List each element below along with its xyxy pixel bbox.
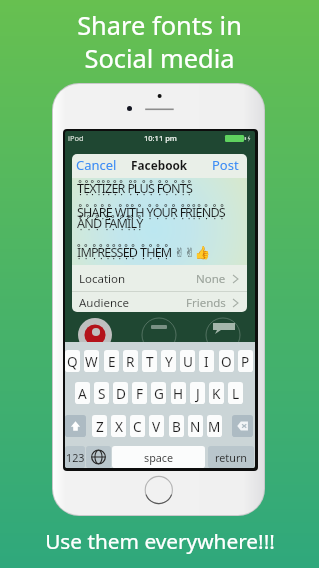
button[interactable]: K [209,382,224,404]
button[interactable]: 123 [65,446,85,468]
staticText: X [115,417,123,436]
button[interactable]: Z [92,415,107,437]
button[interactable]: W [84,350,99,372]
staticText: W [85,352,98,371]
button[interactable]: F [132,382,147,404]
staticText: F [136,384,144,403]
button[interactable]: Post [212,157,247,175]
button[interactable]: space [112,446,205,468]
staticText: J [196,384,200,403]
staticText: Audience [79,295,130,311]
staticText: G [154,384,164,403]
button[interactable]: V [149,415,164,437]
staticText: iPod [68,133,84,143]
button[interactable]: D [113,382,128,404]
button[interactable]: N [188,415,203,437]
button[interactable]: M [207,415,222,437]
staticText: Ị̊Ṃ̊P̣̊Ṛ̊Ẹ̊Ṣ̊Ṣ̊Ẹ̊Ḍ̊ Ṭ̊Ḥ̊Ẹ̊Ṃ̊… [77,244,210,261]
staticText: Q [67,352,78,371]
staticText: U [183,352,193,371]
staticText: V [152,417,161,436]
button[interactable]: U [180,350,195,372]
button[interactable]: H [171,382,186,404]
button[interactable]: R [123,350,138,372]
button[interactable]: Audience [72,292,247,312]
staticText: K [212,384,221,403]
button[interactable]: Backspace [232,415,253,437]
button[interactable]: Shift [65,415,86,437]
button[interactable]: return [208,446,254,468]
button[interactable]: C [130,415,145,437]
button[interactable]: Ṭ̊Ẹ̊X̣̊Ṭ̊Ị̊Ẓ̊Ẹ̊Ṛ̊ P̣̊Ḷ̊Ụ̊Ṣ̊ F̊… [72,178,247,265]
staticText: O [221,352,232,371]
button[interactable]: A [75,382,90,404]
button[interactable]: G [151,382,166,404]
staticText: Z [96,417,104,436]
button[interactable]: L [228,382,243,404]
staticText: Ṣ̊Ḥ̊Ạ̊Ṛ̊Ẹ̊ Ẉ̊Ị̊Ṭ̊Ḥ̊ Ỵ̊Ọ̊Ụ̊R̊… [77,204,225,221]
staticText: None [196,271,226,287]
staticText: Friends [186,295,226,311]
staticText: I [204,352,209,371]
button[interactable]: E [104,350,119,372]
button[interactable]: Cancel [72,157,117,175]
button[interactable]: I [199,350,214,372]
button[interactable]: Location [72,265,247,291]
staticText: 10:11 pm [144,133,177,143]
staticText: B [172,417,181,436]
staticText: T [146,352,154,371]
staticText: N [190,417,201,436]
button[interactable]: B [169,415,184,437]
button[interactable]: Q [65,350,80,372]
staticText: R [126,352,135,371]
staticText: S [98,384,106,403]
button[interactable]: X [111,415,126,437]
button[interactable]: P [238,350,253,372]
staticText: C [133,417,142,436]
staticText: L [232,384,240,403]
button[interactable]: J [190,382,205,404]
staticText: A [78,384,87,403]
button[interactable]: T [142,350,157,372]
staticText: Location [79,271,126,287]
staticText: E [108,352,116,371]
staticText: 123 [66,450,85,465]
staticText: Ṭ̊Ẹ̊X̣̊Ṭ̊Ị̊Ẓ̊Ẹ̊Ṛ̊ P̣̊Ḷ̊Ụ̊Ṣ̊ F̊… [77,180,193,197]
staticText: Ạ̊Ṇ̊Ḍ̊ F̣̊Ạ̊Ṃ̊Ị̊Ḷ̊Ỵ̊ [77,215,143,232]
button[interactable]: S [94,382,109,404]
staticText: Y [165,352,173,371]
staticText: Share fonts in Social media [0,8,319,75]
staticText: Facebook [131,157,188,173]
button[interactable]: Y [161,350,176,372]
staticText: H [173,384,184,403]
staticText: return [215,450,248,465]
staticText: P [241,352,250,371]
staticText: space [144,450,174,465]
staticText: M [208,417,221,436]
staticText: D [116,384,126,403]
button[interactable]: Switch keyboard [86,446,111,468]
staticText: Use them everywhere!!! [45,527,275,555]
button[interactable]: O [219,350,234,372]
